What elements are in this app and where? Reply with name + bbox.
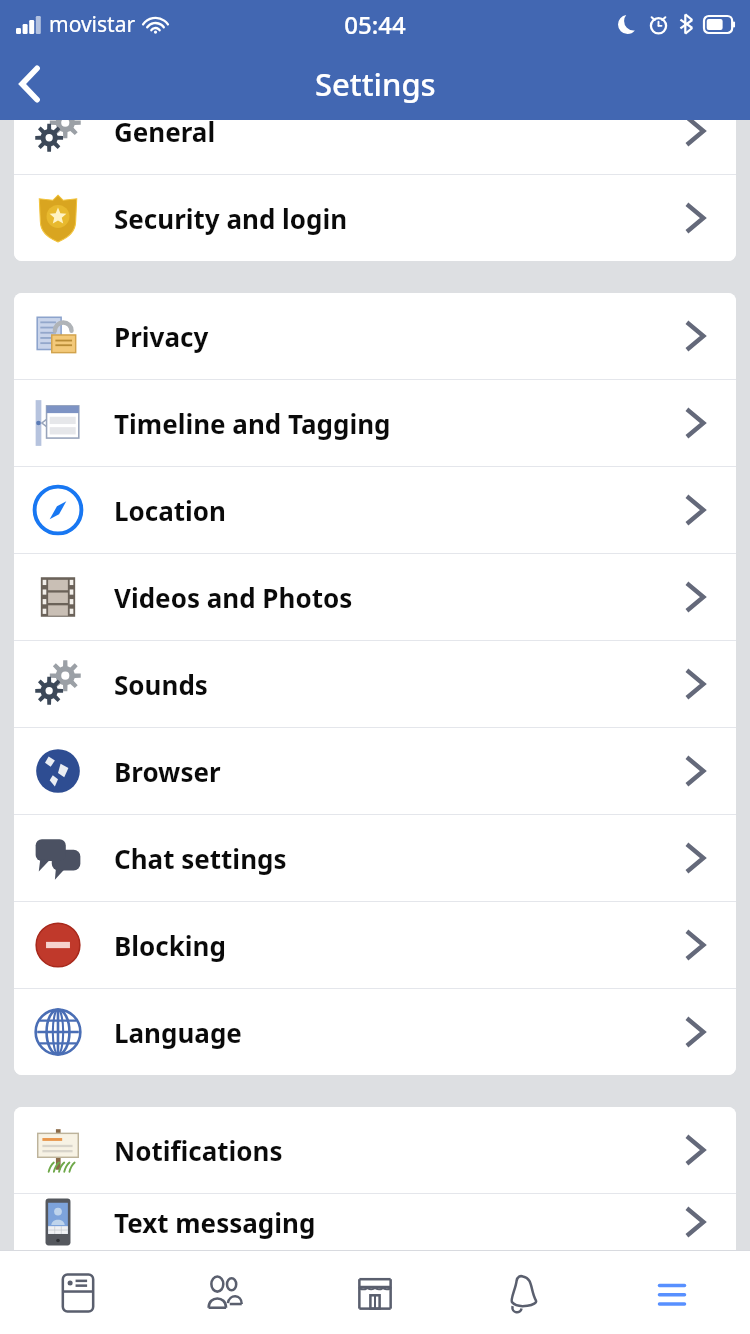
button[interactable]: Privacy bbox=[14, 293, 736, 379]
button[interactable]: Notifications bbox=[453, 1251, 593, 1334]
button[interactable]: Friends bbox=[157, 1251, 297, 1334]
button[interactable]: Security and login bbox=[14, 175, 736, 261]
staticText: Browser bbox=[114, 754, 221, 789]
button[interactable]: Marketplace bbox=[305, 1251, 445, 1334]
staticText: Text messaging bbox=[114, 1205, 316, 1240]
button[interactable]: Menu bbox=[602, 1251, 742, 1334]
button[interactable]: General bbox=[14, 120, 736, 174]
staticText: Chat settings bbox=[114, 841, 287, 876]
staticText: Language bbox=[114, 1015, 242, 1050]
button[interactable]: Chat settings bbox=[14, 815, 736, 901]
staticText: Security and login bbox=[114, 201, 348, 236]
staticText: Location bbox=[114, 493, 226, 528]
button[interactable]: Timeline and Tagging bbox=[14, 380, 736, 466]
button[interactable]: Videos and Photos bbox=[14, 554, 736, 640]
staticText: 05:44 bbox=[344, 8, 406, 41]
staticText: Blocking bbox=[114, 928, 226, 963]
button[interactable]: Sounds bbox=[14, 641, 736, 727]
button[interactable]: Back bbox=[0, 54, 60, 114]
button[interactable]: Blocking bbox=[14, 902, 736, 988]
staticText: General bbox=[114, 120, 216, 149]
button[interactable]: Notifications bbox=[14, 1107, 736, 1193]
button[interactable]: News Feed bbox=[8, 1251, 148, 1334]
staticText: Settings bbox=[315, 63, 436, 105]
staticText: Timeline and Tagging bbox=[114, 406, 391, 441]
staticText: Videos and Photos bbox=[114, 580, 353, 615]
button[interactable]: Browser bbox=[14, 728, 736, 814]
staticText: movistar bbox=[49, 10, 136, 39]
staticText: Sounds bbox=[114, 667, 208, 702]
button[interactable]: Text messaging bbox=[14, 1194, 736, 1250]
staticText: Notifications bbox=[114, 1133, 283, 1168]
staticText: Privacy bbox=[114, 319, 209, 354]
button[interactable]: Language bbox=[14, 989, 736, 1075]
button[interactable]: Location bbox=[14, 467, 736, 553]
